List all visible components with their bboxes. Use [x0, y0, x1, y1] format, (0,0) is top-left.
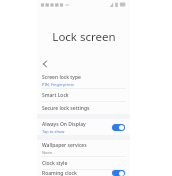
- staticText: None: [42, 150, 53, 155]
- staticText: Smart Lock: [42, 92, 69, 99]
- button[interactable]: Smart Lock: [37, 89, 130, 101]
- button[interactable]: Wallpaper services: [37, 140, 130, 156]
- staticText: Screen lock type: [42, 74, 81, 81]
- staticText: Always On Display: [42, 121, 86, 128]
- staticText: Clock style: [42, 160, 68, 167]
- button[interactable]: Toggle Always On Display: [112, 124, 125, 131]
- button[interactable]: Roaming clock: [37, 170, 130, 176]
- button[interactable]: Clock style: [37, 157, 130, 169]
- button[interactable]: Toggle Roaming clock: [112, 170, 125, 176]
- button[interactable]: Back: [39, 58, 50, 69]
- staticText: Secure lock settings: [42, 105, 90, 112]
- staticText: Wallpaper services: [42, 142, 87, 149]
- staticText: Tap to show: [42, 129, 65, 134]
- button[interactable]: Always On Display: [37, 119, 130, 135]
- staticText: PIN, Fingerprints: [42, 82, 74, 87]
- staticText: Lock screen: [52, 29, 116, 45]
- button[interactable]: Secure lock settings: [37, 102, 130, 114]
- button[interactable]: Screen lock type: [37, 72, 130, 88]
- staticText: Roaming clock: [42, 170, 77, 176]
